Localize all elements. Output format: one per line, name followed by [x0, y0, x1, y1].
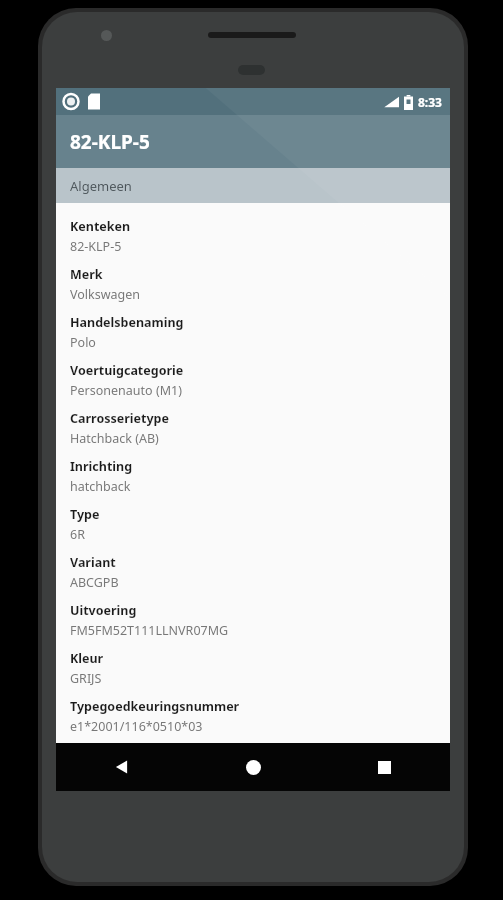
button[interactable]: Handelsbenaming: [56, 309, 450, 357]
button[interactable]: Kleur: [56, 645, 450, 693]
staticText: Typegoedkeuringsnummer: [70, 698, 240, 715]
staticText: Voertuigcategorie: [70, 362, 184, 379]
staticText: 82-KLP-5: [70, 238, 122, 255]
button[interactable]: Voertuigcategorie: [56, 357, 450, 405]
button[interactable]: Variant: [56, 549, 450, 597]
button[interactable]: Home: [188, 743, 319, 791]
button[interactable]: Type: [56, 501, 450, 549]
staticText: GRIJS: [70, 670, 102, 687]
button[interactable]: Inrichting: [56, 453, 450, 501]
staticText: Inrichting: [70, 458, 133, 475]
staticText: 82-KLP-5: [70, 129, 150, 155]
button[interactable]: Merk: [56, 261, 450, 309]
button[interactable]: Recent apps: [319, 743, 450, 791]
staticText: Merk: [70, 266, 103, 283]
staticText: hatchback: [70, 478, 131, 495]
button[interactable]: Kenteken: [56, 213, 450, 261]
staticText: 8:33: [418, 94, 442, 110]
staticText: Kleur: [70, 650, 104, 667]
staticText: ABCGPB: [70, 574, 119, 591]
staticText: Algemeen: [70, 177, 132, 195]
staticText: Personenauto (M1): [70, 382, 182, 399]
button[interactable]: Uitvoering: [56, 597, 450, 645]
staticText: e1*2001/116*0510*03: [70, 718, 203, 735]
button[interactable]: Carrosserietype: [56, 405, 450, 453]
staticText: Polo: [70, 334, 96, 351]
staticText: Kenteken: [70, 218, 131, 235]
staticText: Uitvoering: [70, 602, 137, 619]
button[interactable]: Back: [56, 743, 188, 791]
staticText: Hatchback (AB): [70, 430, 159, 447]
staticText: Variant: [70, 554, 116, 571]
staticText: 6R: [70, 526, 85, 543]
staticText: Handelsbenaming: [70, 314, 184, 331]
staticText: Type: [70, 506, 100, 523]
staticText: FM5FM52T111LLNVR07MG: [70, 622, 229, 639]
button[interactable]: Typegoedkeuringsnummer: [56, 693, 450, 741]
staticText: Volkswagen: [70, 286, 141, 303]
staticText: Carrosserietype: [70, 410, 169, 427]
button[interactable]: 82-KLP-5: [56, 115, 450, 168]
